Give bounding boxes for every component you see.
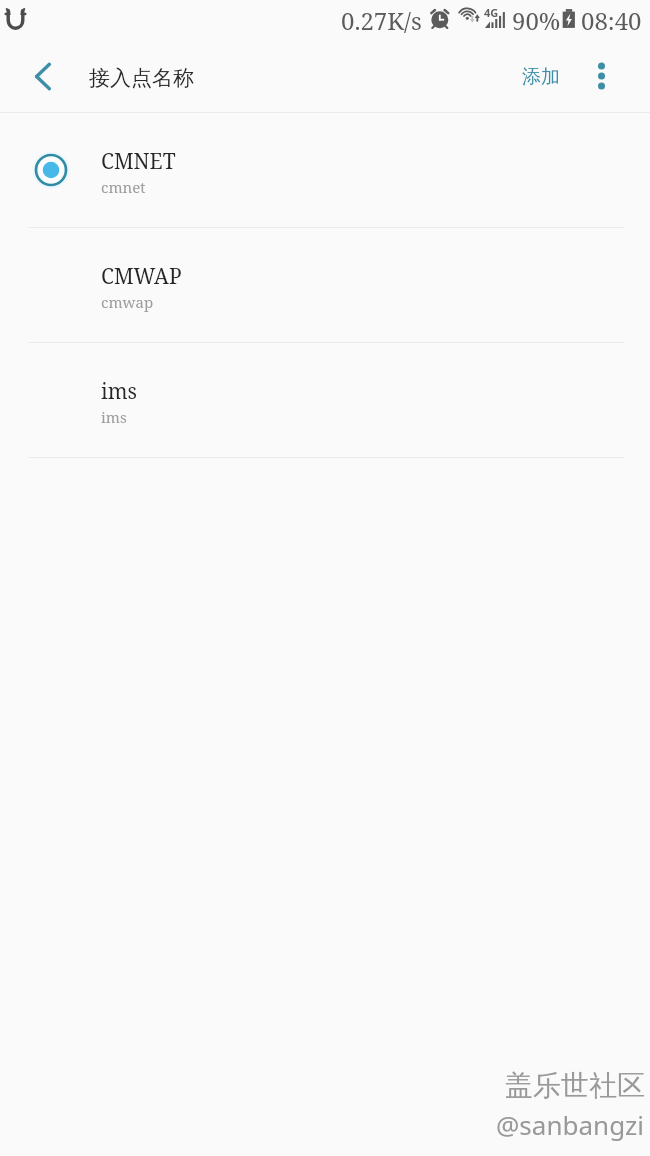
- button[interactable]: 添加: [504, 47, 578, 107]
- button[interactable]: CMNET: [0, 113, 650, 227]
- staticText: 0.27K/s: [341, 4, 422, 37]
- button[interactable]: ims: [0, 343, 650, 457]
- button[interactable]: CMWAP: [0, 228, 650, 342]
- staticText: 添加: [522, 65, 560, 89]
- staticText: 接入点名称: [89, 65, 194, 91]
- staticText: CMNET: [101, 147, 176, 176]
- staticText: 08:40: [581, 4, 642, 37]
- staticText: cmnet: [101, 177, 146, 197]
- staticText: cmwap: [101, 292, 154, 312]
- staticText: 盖乐世社区: [505, 1068, 645, 1103]
- staticText: CMWAP: [101, 262, 182, 291]
- staticText: @sanbangzi: [496, 1107, 645, 1142]
- button[interactable]: Back: [0, 45, 62, 107]
- button[interactable]: More options: [575, 50, 627, 102]
- staticText: ims: [101, 407, 127, 427]
- staticText: 4G: [484, 5, 499, 20]
- staticText: ims: [101, 377, 138, 406]
- staticText: 90%: [512, 4, 561, 37]
